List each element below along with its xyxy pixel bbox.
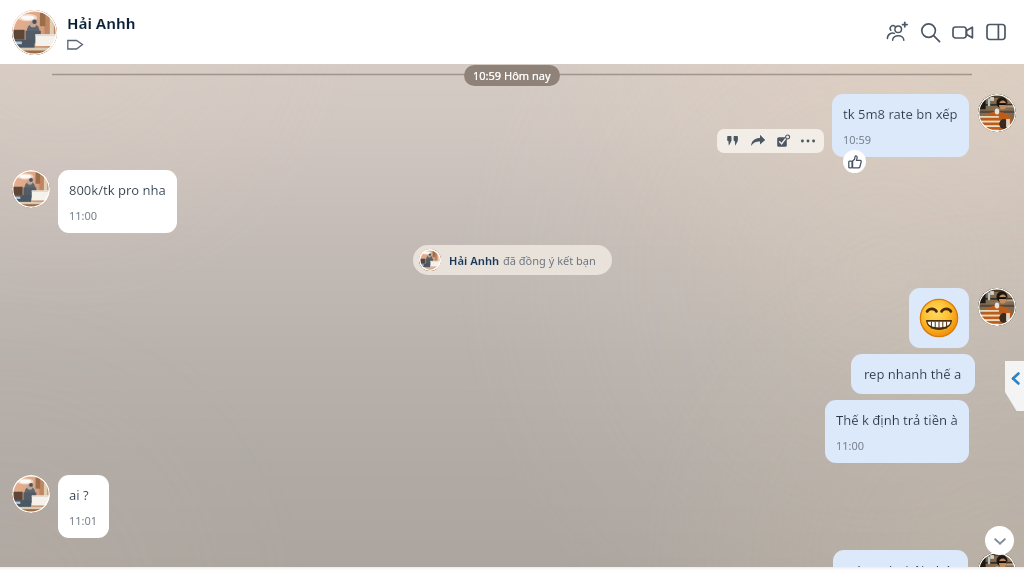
staticText: 11:01 — [69, 513, 98, 528]
button[interactable]: Avatar — [978, 288, 1016, 326]
staticText: Thế k định trả tiền à — [836, 411, 958, 429]
button[interactable]: Add member — [883, 18, 911, 46]
button[interactable]: Quote — [723, 131, 743, 151]
staticText: tùy anh thôi nhé — [851, 562, 952, 571]
button[interactable]: tk 5m8 rate bn xếp — [832, 94, 969, 157]
button[interactable] — [909, 288, 969, 348]
button[interactable]: Avatar — [12, 170, 50, 208]
button[interactable]: 800k/tk pro nha — [58, 170, 177, 233]
button[interactable]: Select — [773, 131, 793, 151]
staticText: 11:00 — [69, 208, 98, 223]
button[interactable]: Forward — [748, 131, 768, 151]
staticText: đã đồng ý kết bạn — [503, 253, 596, 268]
staticText: Hải Anhh — [449, 253, 503, 268]
staticText: Hải Anhh — [67, 13, 136, 33]
button[interactable]: tùy anh thôi nhé — [833, 550, 968, 571]
staticText: 800k/tk pro nha — [69, 181, 166, 199]
button[interactable]: Thế k định trả tiền à — [825, 400, 969, 463]
button[interactable]: 10:59 Hôm nay — [464, 65, 560, 86]
staticText: rep nhanh thế a — [864, 365, 962, 383]
button[interactable]: Avatar — [978, 94, 1016, 132]
button[interactable]: More options — [798, 131, 818, 151]
button[interactable]: Search — [916, 18, 944, 46]
button[interactable]: Collapse panel — [1005, 361, 1024, 411]
button[interactable]: Avatar — [978, 552, 1016, 571]
button[interactable]: Avatar — [12, 475, 50, 513]
button[interactable]: ai ? — [58, 475, 109, 538]
staticText: 11:00 — [836, 438, 865, 453]
button[interactable]: rep nhanh thế a — [851, 354, 975, 394]
button[interactable]: Scroll to bottom — [985, 526, 1014, 555]
staticText: 10:59 — [843, 132, 872, 147]
staticText: 10:59 Hôm nay — [473, 68, 551, 83]
button[interactable]: Video call — [949, 18, 977, 46]
staticText: tk 5m8 rate bn xếp — [843, 105, 958, 123]
button[interactable]: Profile — [12, 10, 57, 55]
staticText: ai ? — [69, 486, 89, 504]
button[interactable]: Like reaction — [843, 150, 866, 173]
button[interactable]: Toggle side panel — [982, 18, 1010, 46]
other: Label — [67, 38, 86, 51]
button[interactable]: Hải Anhh — [413, 245, 612, 275]
